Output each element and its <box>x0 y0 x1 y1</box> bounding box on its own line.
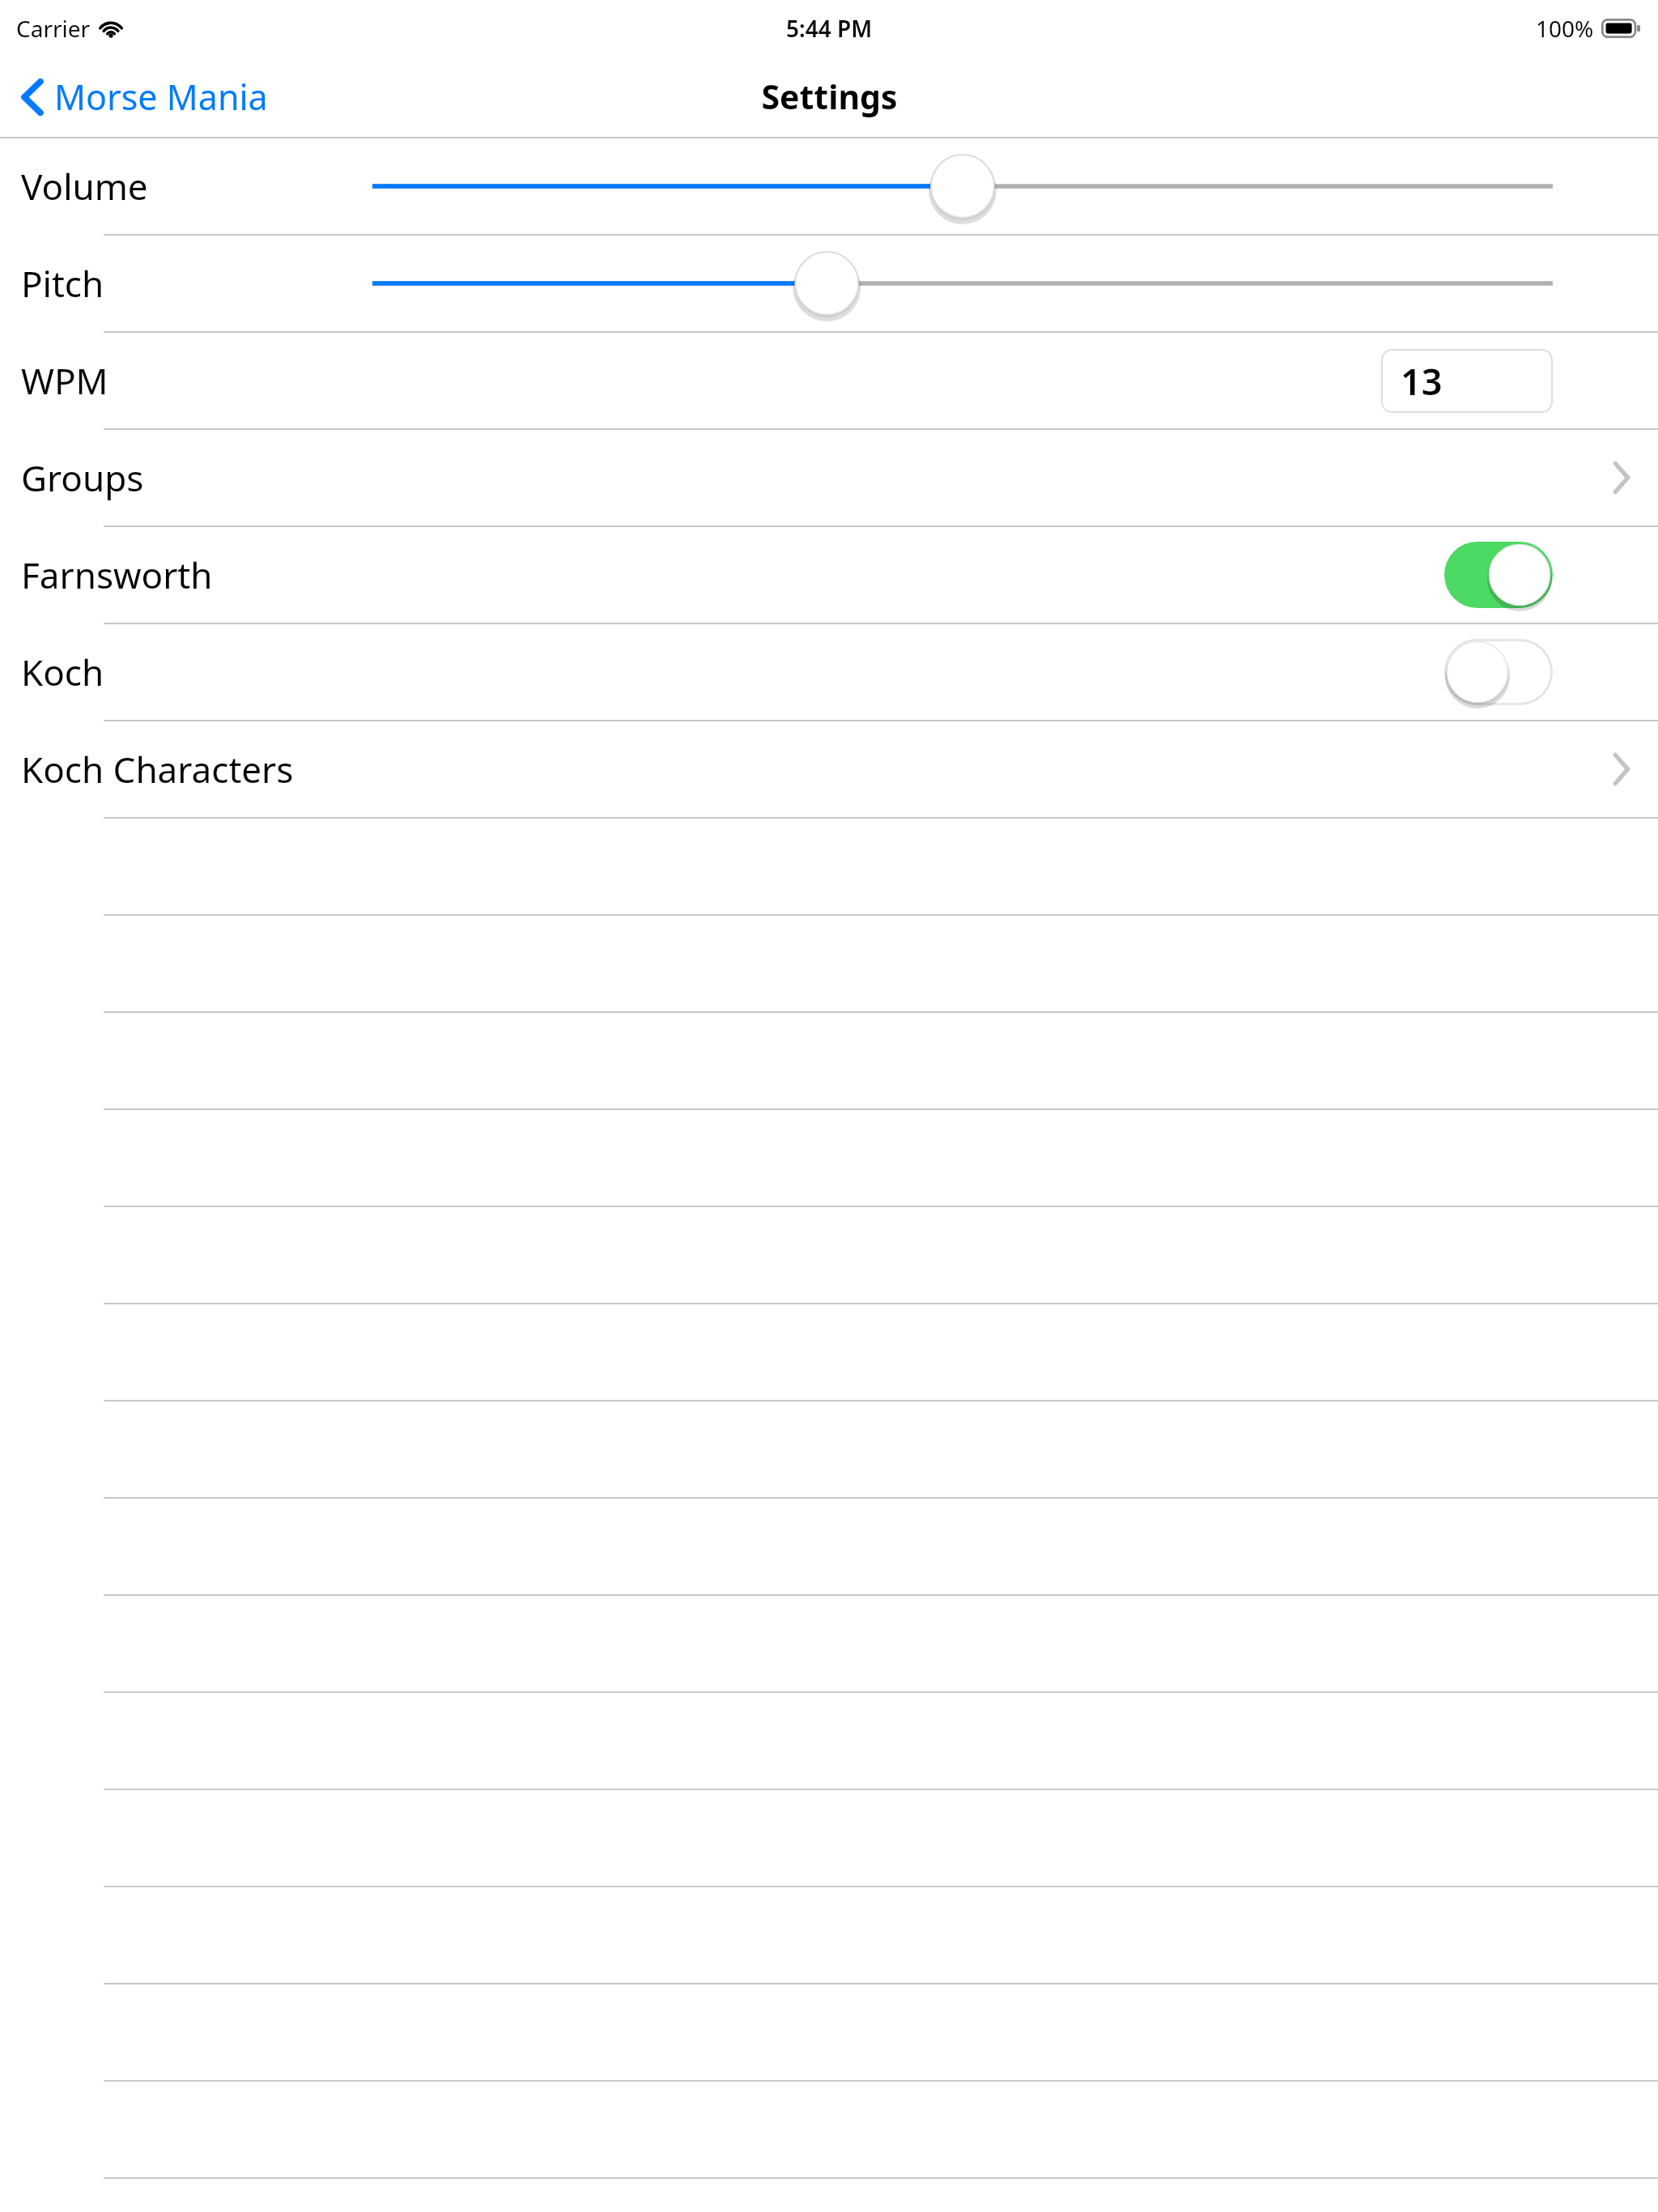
button[interactable]: Pitch <box>0 236 1658 331</box>
button[interactable]: Words per minute <box>1381 349 1553 413</box>
button[interactable]: WPM <box>0 333 1658 428</box>
button[interactable]: Koch <box>1444 639 1553 705</box>
button[interactable] <box>0 1984 1658 2080</box>
staticText: Pitch <box>21 259 104 308</box>
staticText: Groups <box>21 453 144 502</box>
button[interactable] <box>0 1887 1658 1983</box>
button[interactable]: Koch <box>0 624 1658 720</box>
staticText: Carrier <box>16 13 91 44</box>
button[interactable] <box>0 1693 1658 1789</box>
staticText: Koch <box>21 648 104 696</box>
button[interactable] <box>0 1207 1658 1303</box>
staticText: 5:44 PM <box>786 13 873 44</box>
staticText: Volume <box>21 162 148 211</box>
button[interactable] <box>0 1304 1658 1400</box>
button[interactable]: Slider <box>340 236 1569 331</box>
button[interactable]: Farnsworth <box>0 527 1658 623</box>
staticText: Morse Mania <box>54 73 268 121</box>
staticText: Koch Characters <box>21 745 294 793</box>
button[interactable] <box>0 1790 1658 1886</box>
button[interactable]: Groups <box>1585 430 1658 525</box>
staticText: Farnsworth <box>21 551 213 599</box>
staticText: 13 <box>1401 356 1443 406</box>
button[interactable] <box>0 1110 1658 1206</box>
button[interactable]: Koch Characters <box>0 721 1658 817</box>
staticText: 100% <box>1536 13 1594 44</box>
staticText: Settings <box>761 74 898 119</box>
button[interactable]: Farnsworth <box>1444 542 1553 608</box>
button[interactable]: Morse Mania <box>0 63 287 130</box>
staticText: WPM <box>21 356 108 405</box>
button[interactable]: Koch Characters <box>1585 721 1658 817</box>
button[interactable]: Slider <box>340 138 1569 234</box>
button[interactable]: Groups <box>0 430 1658 525</box>
button[interactable]: Volume <box>0 138 1658 234</box>
